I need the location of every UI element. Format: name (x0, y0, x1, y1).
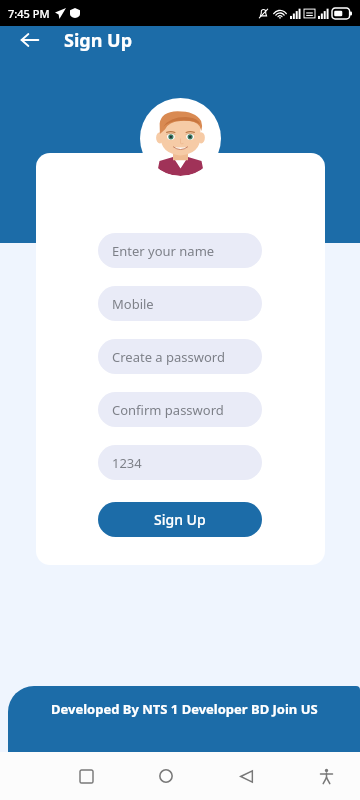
button[interactable]: Back (226, 756, 266, 796)
button[interactable]: Developed By NTS 1 Developer BD Join US (8, 686, 360, 752)
button[interactable]: Create a password (98, 339, 262, 374)
staticText: 7:45 PM (8, 6, 50, 21)
button[interactable]: Recents (66, 756, 106, 796)
staticText: Sign Up (154, 510, 206, 529)
button[interactable]: 1234 (98, 445, 262, 480)
button[interactable]: Enter your name (98, 233, 262, 268)
button[interactable]: Confirm password (98, 392, 262, 427)
staticText: Enter your name (112, 242, 215, 260)
staticText: Mobile (112, 295, 154, 313)
button[interactable]: Mobile (98, 286, 262, 321)
button[interactable]: Back (12, 26, 48, 54)
staticText: Sign Up (64, 28, 133, 53)
staticText: Create a password (112, 348, 225, 366)
button[interactable]: Sign Up (98, 502, 262, 537)
button[interactable]: Home (146, 756, 186, 796)
staticText: 1234 (112, 454, 142, 472)
staticText: Confirm password (112, 401, 224, 419)
staticText: Developed By NTS 1 Developer BD Join US (51, 700, 318, 718)
button[interactable]: Accessibility (306, 756, 346, 796)
